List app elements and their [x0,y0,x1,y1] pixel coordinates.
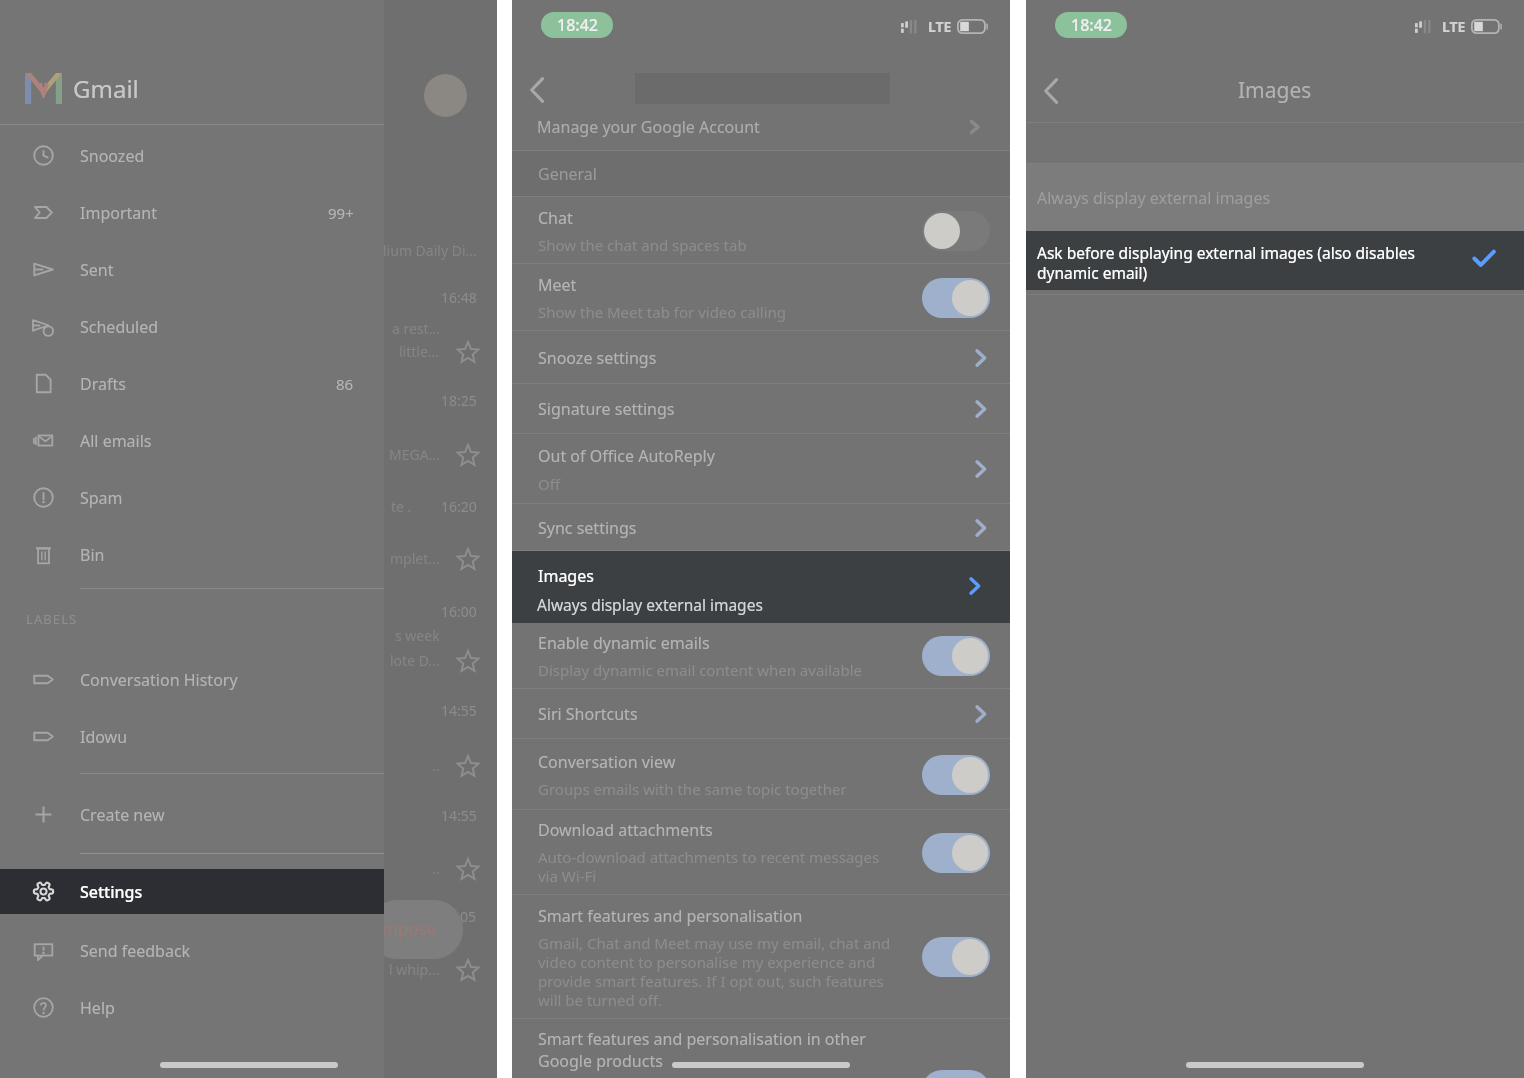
staticText: 18:25 [441,391,477,410]
staticText: Images [1238,76,1312,105]
staticText: little... [399,342,440,361]
staticText: Sent [80,259,114,281]
staticText: Create new [80,804,165,826]
button[interactable]: Create new [0,786,384,843]
staticText: .. [432,859,440,878]
button[interactable]: Bin [0,526,384,583]
staticText: Images [538,565,594,587]
staticText: 16:00 [441,602,477,621]
staticText: All emails [80,430,152,452]
button[interactable]: Settings [0,869,384,914]
staticText: Snoozed [80,145,145,167]
staticText: Auto-download attachments to recent mess… [538,847,880,886]
staticText: LTE [928,17,952,36]
button[interactable]: Always display external images [1026,164,1524,231]
button[interactable]: Drafts [0,355,384,412]
staticText: 16:20 [441,497,477,516]
button[interactable]: Download attachments [512,810,1010,895]
staticText: Settings [80,881,143,903]
staticText: lium Daily Di... [383,241,477,260]
button[interactable]: Back [509,62,565,118]
button[interactable]: Google Account [424,74,467,117]
staticText: 18:42 [557,14,598,36]
button[interactable]: Chat [512,197,1010,264]
staticText: Idowu [80,726,128,748]
button[interactable]: Send feedback [0,922,384,979]
staticText: 14:55 [441,701,477,720]
staticText: Important [80,202,157,224]
staticText: 05 [460,907,477,926]
button[interactable]: All emails [0,412,384,469]
staticText: Always display external images [1037,187,1271,209]
staticText: Ask before displaying external images (a… [1037,242,1415,283]
staticText: Siri Shortcuts [538,703,638,725]
staticText: 18:42 [1071,14,1112,36]
button[interactable]: Smart features and personalisation [512,895,1010,1019]
staticText: Show the chat and spaces tab [538,235,747,255]
button[interactable]: Ask before displaying external images (a… [1026,231,1524,290]
staticText: Out of Office AutoReply [538,445,715,467]
button[interactable]: Idowu [0,708,384,765]
button[interactable] [922,278,990,318]
staticText: LTE [1442,17,1466,36]
staticText: Always display external images [537,594,763,615]
button[interactable]: Help [0,979,384,1036]
staticText: Meet [538,274,577,296]
staticText: Snooze settings [538,347,657,369]
staticText: a rest... [392,319,440,338]
staticText: Show the Meet tab for video calling [538,302,787,322]
button[interactable]: Manage your Google Account [512,120,1010,146]
staticText: lote D... [390,651,440,670]
staticText: General [538,163,597,185]
staticText: Off [538,474,561,494]
button[interactable]: Enable dynamic emails [512,623,1010,689]
button[interactable] [922,833,990,873]
button[interactable]: Siri Shortcuts [512,689,1010,739]
staticText: l whip... [389,960,440,979]
staticText: Help [80,997,115,1019]
button[interactable]: Conversation History [0,651,384,708]
button[interactable]: Important [0,184,384,241]
button[interactable] [922,636,990,676]
button[interactable] [922,211,990,251]
button[interactable]: Snoozed [0,127,384,184]
staticText: mpose [382,917,437,940]
button[interactable]: Signature settings [512,384,1010,434]
button[interactable]: Sync settings [512,504,1010,551]
button[interactable]: Conversation view [512,739,1010,810]
staticText: Signature settings [538,398,675,420]
staticText: Gmail, Chat and Meet may use my email, c… [538,933,891,1010]
staticText: Chat [538,207,573,229]
button[interactable]: Sent [0,241,384,298]
staticText: Manage your Google Account [537,120,760,138]
staticText: Enable dynamic emails [538,632,710,654]
button[interactable]: mpose [368,900,463,959]
staticText: Conversation view [538,751,676,773]
staticText: Bin [80,544,105,566]
button[interactable] [922,937,990,977]
staticText: Send feedback [80,940,191,962]
button[interactable] [922,755,990,795]
button[interactable]: Back [1023,63,1079,119]
button[interactable]: Out of Office AutoReply [512,434,1010,504]
staticText: s week [395,626,440,645]
staticText: .. [432,756,440,775]
staticText: Drafts [80,373,126,395]
button[interactable]: Meet [512,264,1010,331]
staticText: Sync settings [538,517,637,539]
staticText: MEGA... [389,445,440,464]
staticText: Conversation History [80,669,238,691]
staticText: Groups emails with the same topic togeth… [538,779,847,799]
staticText: Scheduled [80,316,159,338]
staticText: Gmail [73,72,139,105]
staticText: LABELS [26,610,78,628]
button[interactable]: Snooze settings [512,331,1010,384]
staticText: te . [391,497,412,516]
button[interactable]: Spam [0,469,384,526]
staticText: 99+ [328,203,354,223]
staticText: Display dynamic email content when avail… [538,660,863,680]
button[interactable]: Images [512,551,1010,623]
staticText: 14:55 [441,806,477,825]
button[interactable]: Scheduled [0,298,384,355]
staticText: Smart features and personalisation [538,905,803,927]
